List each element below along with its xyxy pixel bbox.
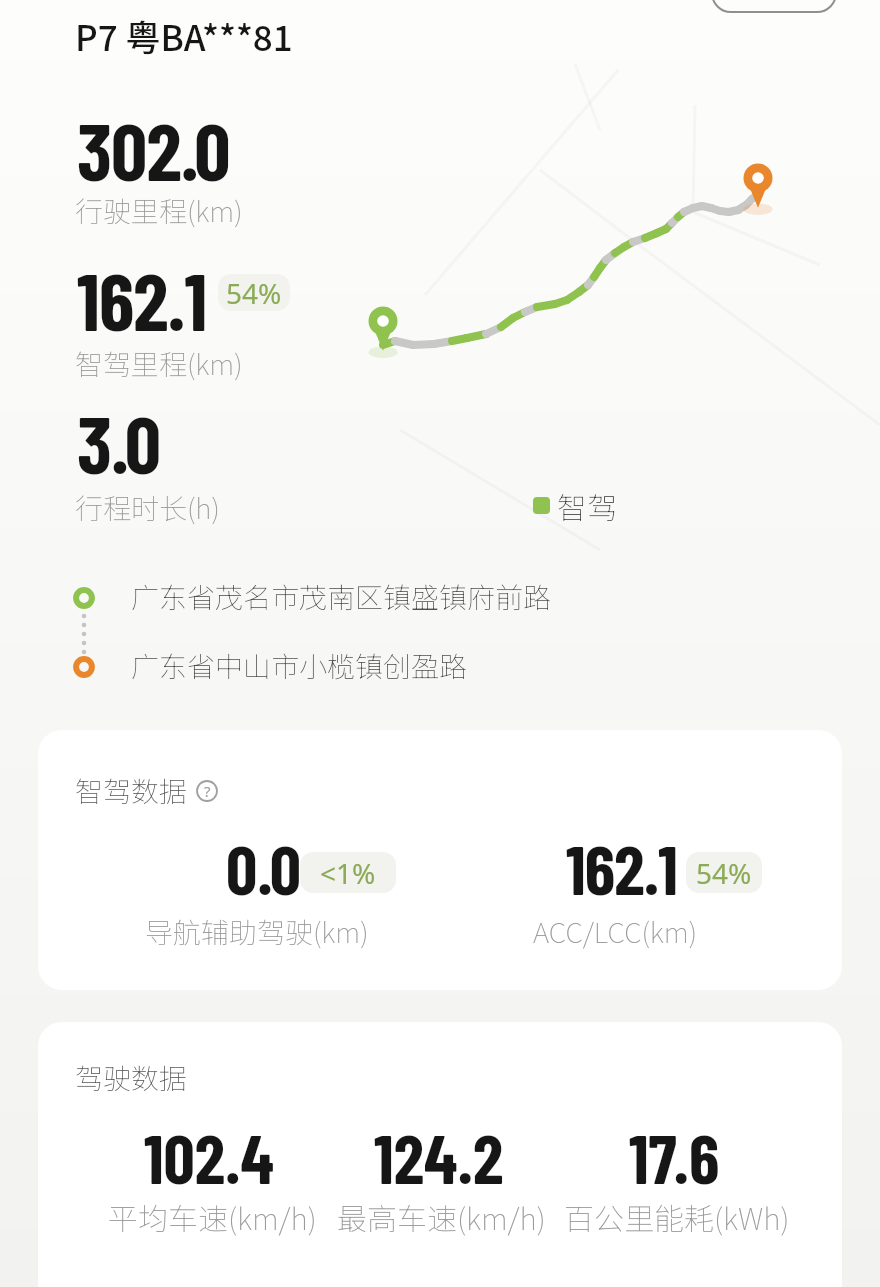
staticText: 最高车速(km/h) — [337, 1195, 546, 1238]
staticText: 162.1 — [566, 826, 678, 909]
staticText: <1% — [320, 854, 376, 892]
staticText: 54% — [696, 854, 752, 892]
staticText: 智驾 — [557, 484, 617, 527]
staticText: 17.6 — [629, 1115, 720, 1198]
staticText: 智驾数据 — [75, 770, 188, 811]
staticText: 3.0 — [77, 394, 161, 490]
button[interactable] — [712, 0, 836, 14]
staticText: 0.0 — [226, 826, 301, 909]
staticText: ACC/LCC(km) — [533, 911, 698, 952]
staticText: 54% — [226, 274, 282, 311]
staticText: 行驶里程(km) — [75, 190, 243, 231]
staticText: 行程时长(h) — [75, 487, 220, 528]
staticText: 百公里能耗(kWh) — [564, 1195, 790, 1238]
staticText: 导航辅助驾驶(km) — [145, 911, 369, 952]
staticText: 广东省中山市小榄镇创盈路 — [131, 645, 468, 686]
staticText: 162.1 — [77, 251, 207, 347]
button[interactable]: ? — [196, 780, 218, 802]
staticText: 驾驶数据 — [75, 1057, 188, 1098]
staticText: 平均车速(km/h) — [108, 1195, 317, 1238]
staticText: 智驾里程(km) — [75, 343, 243, 384]
staticText: P7 粤BA***81 — [75, 10, 293, 61]
staticText: ? — [204, 781, 211, 801]
staticText: 102.4 — [144, 1115, 274, 1198]
staticText: 广东省茂名市茂南区镇盛镇府前路 — [131, 576, 552, 617]
staticText: 124.2 — [374, 1115, 504, 1198]
staticText: 302.0 — [77, 101, 230, 197]
